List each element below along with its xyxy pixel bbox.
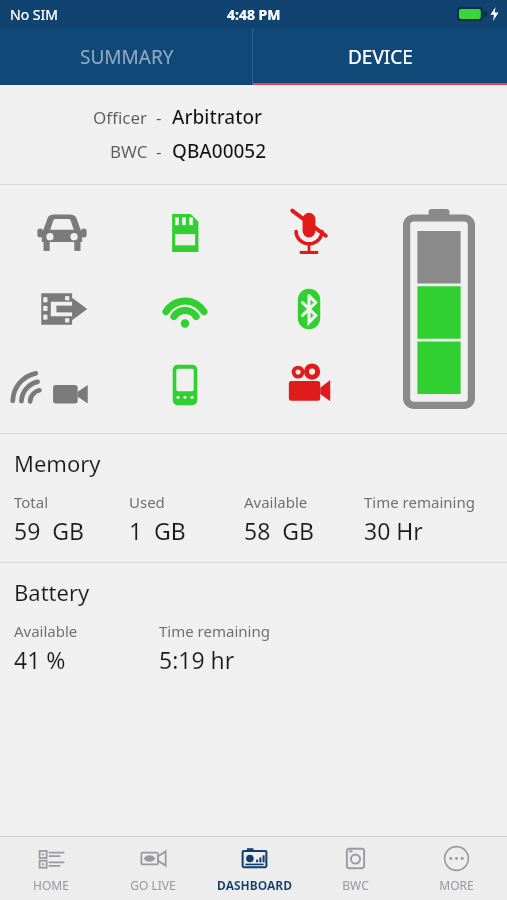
other: Transfer — [34, 281, 90, 337]
staticText: SUMMARY — [80, 44, 174, 70]
staticText: Total — [14, 492, 49, 512]
staticText: MORE — [439, 877, 474, 893]
other: Wireless camera — [34, 357, 90, 413]
staticText: GO LIVE — [130, 877, 176, 893]
staticText: 30 Hr — [364, 515, 423, 546]
staticText: 1 GB — [129, 515, 186, 546]
staticText: QBA00052 — [172, 138, 267, 164]
button[interactable]: HOME — [0, 837, 102, 900]
staticText: Battery — [14, 577, 90, 607]
staticText: Available — [14, 621, 78, 641]
staticText: - — [156, 106, 162, 129]
staticText: BWC — [342, 877, 369, 893]
staticText: Officer — [93, 106, 148, 129]
staticText: 41 % — [14, 644, 66, 675]
staticText: 4:48 PM — [227, 5, 281, 24]
other: Bluetooth — [281, 281, 337, 337]
button[interactable]: DEVICE — [253, 28, 507, 85]
staticText: Available — [244, 492, 308, 512]
button[interactable]: MORE — [406, 837, 507, 900]
staticText: Time remaining — [159, 621, 270, 641]
other: Microphone muted — [281, 205, 337, 261]
button[interactable]: DASHBOARD — [204, 837, 305, 900]
other: Wi-Fi — [157, 281, 213, 337]
staticText: HOME — [33, 877, 69, 893]
staticText: Time remaining — [364, 492, 475, 512]
staticText: BWC — [110, 140, 148, 163]
other: Battery level — [403, 209, 475, 409]
other: Device — [157, 357, 213, 413]
button[interactable]: GO LIVE — [102, 837, 204, 900]
staticText: Memory — [14, 448, 101, 478]
staticText: DASHBOARD — [217, 877, 292, 893]
other: Vehicle — [34, 205, 90, 261]
staticText: 59 GB — [14, 515, 84, 546]
other: SD card — [157, 205, 213, 261]
other: Recording — [281, 357, 337, 413]
staticText: DEVICE — [348, 44, 413, 70]
staticText: - — [156, 140, 162, 163]
button[interactable]: SUMMARY — [0, 28, 253, 85]
button[interactable]: BWC — [305, 837, 406, 900]
staticText: Arbitrator — [172, 104, 263, 130]
staticText: No SIM — [10, 5, 58, 24]
staticText: 5:19 hr — [159, 644, 235, 675]
staticText: 58 GB — [244, 515, 314, 546]
staticText: Used — [129, 492, 165, 512]
